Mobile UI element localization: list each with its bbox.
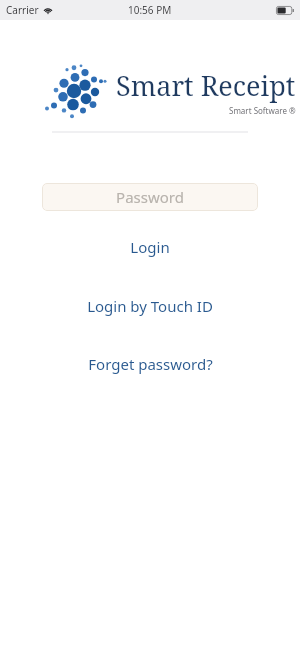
button[interactable]: Login by Touch ID <box>0 294 300 318</box>
staticText: Forget password? <box>88 354 213 374</box>
button[interactable]: Password <box>42 183 258 211</box>
staticText: Password <box>116 187 184 207</box>
staticText: Smart Software ® <box>229 105 296 116</box>
staticText: 10:56 PM <box>128 3 172 17</box>
staticText: Login <box>130 237 170 257</box>
button[interactable]: Forget password? <box>0 352 300 376</box>
button[interactable]: Login <box>0 235 300 259</box>
staticText: Carrier <box>6 3 39 17</box>
staticText: Login by Touch ID <box>87 296 213 316</box>
staticText: Smart Receipt <box>116 67 296 104</box>
